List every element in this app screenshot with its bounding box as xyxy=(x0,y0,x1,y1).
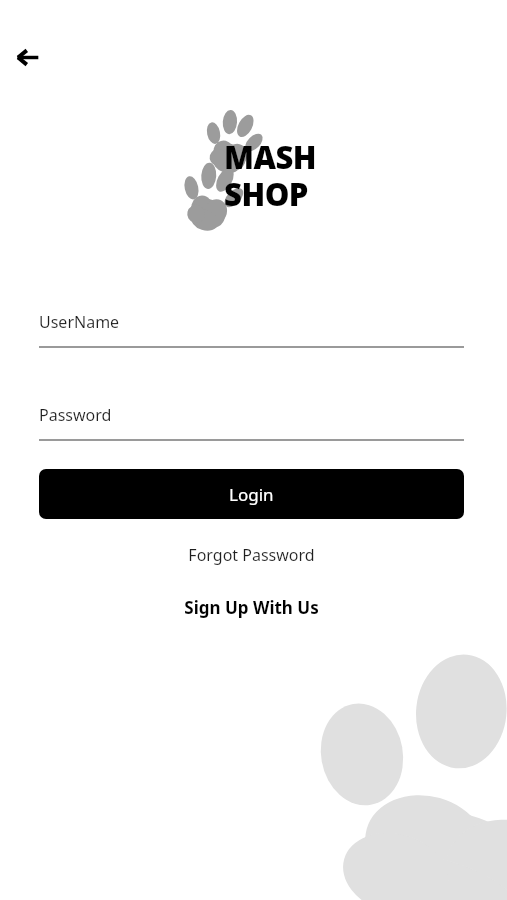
button[interactable]: Password xyxy=(39,404,464,441)
staticText: Sign Up With Us xyxy=(184,596,319,619)
staticText: Password xyxy=(39,404,112,426)
button[interactable]: Login xyxy=(39,469,464,519)
staticText: Forgot Password xyxy=(188,544,315,566)
button[interactable]: Forgot Password xyxy=(39,544,464,566)
button[interactable]: UserName xyxy=(39,311,464,348)
staticText: MASH xyxy=(224,136,317,178)
staticText: SHOP xyxy=(224,173,308,215)
button[interactable]: Sign Up With Us xyxy=(39,596,464,619)
staticText: UserName xyxy=(39,311,120,333)
button[interactable]: Back xyxy=(6,36,48,78)
staticText: Login xyxy=(229,483,274,506)
